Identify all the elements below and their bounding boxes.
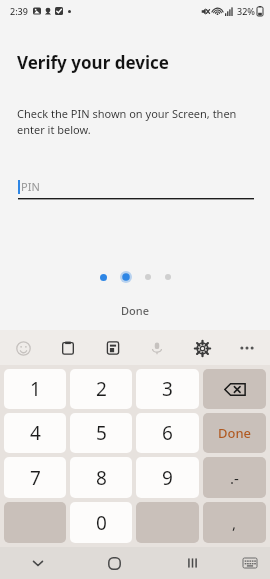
button[interactable]: 8	[70, 457, 132, 498]
button[interactable]: Done	[109, 300, 161, 321]
staticText: PIN	[21, 179, 40, 194]
staticText: 2	[96, 376, 107, 402]
button[interactable]: 1	[4, 369, 66, 409]
staticText: Verify your device	[17, 51, 169, 74]
button[interactable]: 3	[136, 369, 199, 409]
button[interactable]: Done	[203, 413, 266, 453]
button[interactable]: 4	[4, 413, 66, 453]
button[interactable]: More options	[230, 331, 264, 365]
staticText: Done	[218, 424, 252, 442]
staticText: 5	[96, 420, 107, 446]
staticText: 32%	[237, 5, 255, 17]
button[interactable]: 0	[70, 502, 132, 543]
staticText: 7	[30, 465, 41, 491]
button[interactable]: 5	[70, 413, 132, 453]
button[interactable]: Switch keyboard	[230, 547, 270, 579]
button[interactable]: Stickers	[96, 331, 130, 365]
staticText: 8	[96, 465, 107, 491]
button[interactable]: Backspace	[203, 369, 266, 409]
button[interactable]: 9	[136, 457, 199, 498]
staticText: ,	[232, 513, 237, 533]
staticText: 9	[162, 465, 173, 491]
staticText: Check the PIN shown on your Screen, then…	[17, 106, 237, 137]
button[interactable]: 7	[4, 457, 66, 498]
button[interactable]: 2	[70, 369, 132, 409]
button[interactable]: Keyboard settings	[185, 331, 219, 365]
button[interactable]	[136, 502, 199, 543]
staticText: 2:39	[10, 5, 28, 17]
button[interactable]: Emoji	[6, 331, 40, 365]
staticText: 1	[30, 376, 41, 402]
button[interactable]: Home	[76, 547, 153, 579]
staticText: 4	[30, 420, 41, 446]
button[interactable]	[4, 502, 66, 543]
staticText: 6	[162, 420, 173, 446]
button[interactable]: .-	[203, 457, 266, 498]
button[interactable]: Voice input	[140, 331, 174, 365]
button[interactable]: PIN	[18, 173, 254, 199]
button[interactable]: Hide keyboard	[0, 547, 76, 579]
button[interactable]: Recent apps	[153, 547, 230, 579]
button[interactable]: 6	[136, 413, 199, 453]
staticText: 3	[162, 376, 173, 402]
button[interactable]: Clipboard	[51, 331, 85, 365]
staticText: .-	[230, 468, 239, 488]
button[interactable]: ,	[203, 502, 266, 543]
staticText: 0	[96, 510, 107, 536]
